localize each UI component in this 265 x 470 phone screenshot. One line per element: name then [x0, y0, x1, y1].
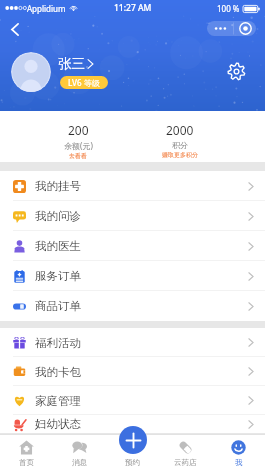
button[interactable]: 云药店 [159, 434, 212, 470]
button[interactable]: Back [4, 18, 26, 40]
button[interactable]: 张三 [58, 55, 94, 72]
staticText: 赚取更多积分 [162, 151, 198, 159]
button[interactable]: 妇幼状态 [0, 415, 265, 433]
button[interactable]: 200 [27, 111, 129, 162]
staticText: 首页 [19, 458, 34, 467]
staticText: 我的卡包 [35, 365, 81, 379]
button[interactable]: 我的问诊 [0, 201, 265, 231]
staticText: 我 [235, 458, 243, 467]
button[interactable]: 预约 [106, 434, 159, 470]
staticText: 100 % [217, 3, 240, 14]
staticText: 11:27 AM [114, 2, 152, 14]
button[interactable]: 2000 [129, 111, 231, 162]
button[interactable]: 预约 Add [119, 426, 147, 454]
button[interactable]: Record [234, 21, 256, 36]
staticText: 福利活动 [35, 336, 81, 350]
button[interactable]: 我的卡包 [0, 357, 265, 386]
button[interactable]: More [207, 21, 234, 36]
staticText: 我的挂号 [35, 179, 81, 193]
button[interactable]: Avatar [11, 52, 51, 92]
staticText: 预约 [125, 458, 140, 467]
button[interactable]: 服务订单 [0, 261, 265, 291]
staticText: 服务订单 [35, 269, 81, 283]
staticText: 云药店 [174, 458, 197, 467]
button[interactable]: LV6 等级 [60, 76, 108, 89]
button[interactable]: 首页 [0, 434, 53, 470]
button[interactable]: Settings [227, 62, 246, 81]
staticText: 商品订单 [35, 299, 81, 313]
button[interactable]: 家庭管理 [0, 386, 265, 415]
staticText: 我的医生 [35, 239, 81, 253]
staticText: 张三 [58, 55, 85, 72]
staticText: 家庭管理 [35, 394, 81, 408]
staticText: 余额(元) [64, 140, 93, 151]
staticText: 积分 [172, 140, 188, 150]
staticText: 2000 [166, 122, 194, 138]
staticText: Applidium [27, 3, 66, 14]
button[interactable]: 我 [212, 434, 265, 470]
staticText: 消息 [72, 458, 87, 467]
staticText: LV6 等级 [68, 77, 100, 88]
button[interactable]: 我的医生 [0, 231, 265, 261]
staticText: 妇幼状态 [35, 417, 81, 431]
staticText: 我的问诊 [35, 209, 81, 223]
staticText: 去看看 [69, 152, 87, 160]
button[interactable]: 我的挂号 [0, 171, 265, 201]
button[interactable]: 商品订单 [0, 291, 265, 321]
button[interactable]: 消息 [53, 434, 106, 470]
staticText: 200 [68, 122, 89, 138]
button[interactable]: 福利活动 [0, 328, 265, 357]
